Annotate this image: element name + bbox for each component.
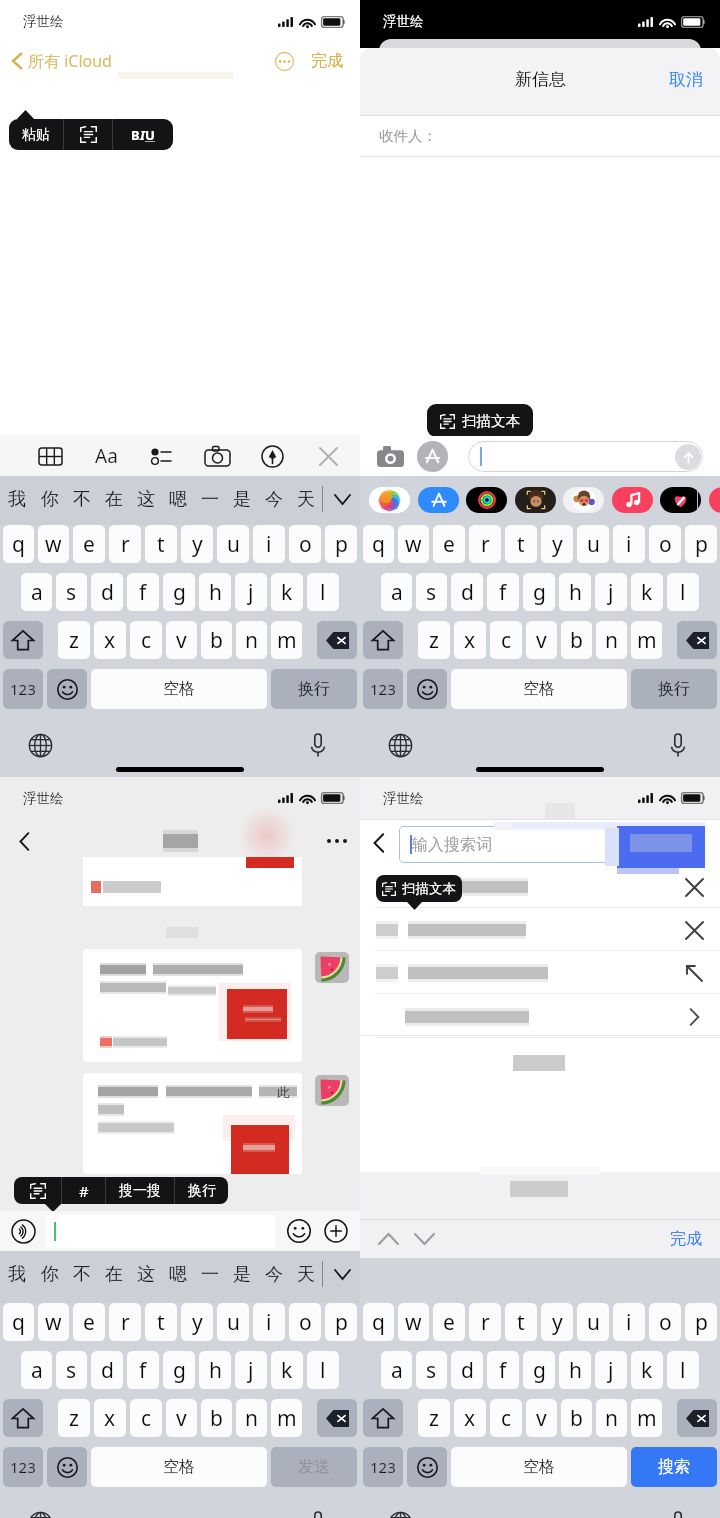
- button[interactable]: 空格: [451, 1447, 627, 1487]
- button[interactable]: Emoji: [407, 1447, 447, 1487]
- button[interactable]: y: [541, 1303, 573, 1341]
- button[interactable]: w: [38, 525, 69, 563]
- button[interactable]: d: [91, 1351, 123, 1389]
- button[interactable]: 这: [130, 476, 162, 522]
- button[interactable]: 换行: [175, 1177, 228, 1204]
- button[interactable]: 天: [290, 476, 322, 522]
- button[interactable]: 我: [0, 1251, 33, 1297]
- button[interactable]: s: [56, 573, 87, 611]
- button[interactable]: y: [181, 525, 213, 563]
- button[interactable]: j: [235, 573, 267, 611]
- button[interactable]: v: [526, 621, 557, 659]
- button[interactable]: i: [613, 1303, 645, 1341]
- button[interactable]: 123: [3, 1447, 43, 1487]
- button[interactable]: 空格: [91, 669, 267, 709]
- button[interactable]: Memoji: [515, 487, 556, 513]
- button[interactable]: k: [271, 1351, 303, 1389]
- button[interactable]: close: [312, 440, 344, 472]
- button[interactable]: a: [21, 573, 52, 611]
- button[interactable]: f: [487, 573, 519, 611]
- button[interactable]: checklist: [145, 440, 177, 472]
- button[interactable]: a: [381, 1351, 412, 1389]
- button[interactable]: r: [109, 525, 141, 563]
- button[interactable]: 一: [194, 1251, 226, 1297]
- button[interactable]: j: [595, 573, 627, 611]
- button[interactable]: s: [56, 1351, 87, 1389]
- button[interactable]: b: [201, 621, 232, 659]
- button[interactable]: 一: [194, 476, 226, 522]
- button[interactable]: n: [236, 1399, 267, 1437]
- button[interactable]: w: [398, 1303, 429, 1341]
- button[interactable]: c: [130, 1399, 162, 1437]
- button[interactable]: c: [490, 621, 522, 659]
- button[interactable]: b: [561, 1399, 592, 1437]
- button[interactable]: Change keyboard: [25, 1508, 55, 1518]
- button[interactable]: f: [127, 1351, 159, 1389]
- button[interactable]: 不: [66, 476, 98, 522]
- button[interactable]: p: [685, 1303, 717, 1341]
- button[interactable]: #: [62, 1177, 105, 1204]
- button[interactable]: t: [145, 1303, 177, 1341]
- button[interactable]: a: [21, 1351, 52, 1389]
- button[interactable]: Next: [408, 1223, 440, 1255]
- button[interactable]: 今: [258, 476, 290, 522]
- button[interactable]: o: [649, 1303, 681, 1341]
- button[interactable]: m: [631, 1399, 662, 1437]
- button[interactable]: 输入搜索词: [399, 826, 696, 863]
- button[interactable]: i: [253, 1303, 285, 1341]
- button[interactable]: Voice input: [8, 1216, 38, 1246]
- button[interactable]: l: [667, 1351, 699, 1389]
- button[interactable]: p: [685, 525, 717, 563]
- button[interactable]: r: [469, 525, 501, 563]
- button[interactable]: l: [307, 1351, 339, 1389]
- button[interactable]: c: [490, 1399, 522, 1437]
- button[interactable]: 完成: [311, 51, 343, 71]
- button[interactable]: k: [631, 573, 663, 611]
- button[interactable]: Emoji: [285, 1217, 313, 1245]
- button[interactable]: i: [613, 525, 645, 563]
- button[interactable]: j: [235, 1351, 267, 1389]
- button[interactable]: h: [199, 1351, 231, 1389]
- button[interactable]: n: [596, 1399, 627, 1437]
- button[interactable]: Photos: [369, 487, 410, 513]
- button[interactable]: g: [163, 1351, 195, 1389]
- button[interactable]: d: [451, 573, 483, 611]
- button[interactable]: q: [3, 1303, 34, 1341]
- button[interactable]: 123: [363, 669, 403, 709]
- button[interactable]: 空格: [91, 1447, 267, 1487]
- button[interactable]: e: [73, 1303, 105, 1341]
- button[interactable]: s: [416, 573, 447, 611]
- button[interactable]: Dictate: [303, 730, 333, 760]
- button[interactable]: r: [469, 1303, 501, 1341]
- button[interactable]: Health: [660, 487, 701, 513]
- button[interactable]: g: [523, 1351, 555, 1389]
- button[interactable]: 取消: [669, 69, 703, 90]
- button[interactable]: More: [322, 1217, 350, 1245]
- button[interactable]: n: [596, 621, 627, 659]
- button[interactable]: 发送: [271, 1447, 357, 1487]
- button[interactable]: v: [526, 1399, 557, 1437]
- button[interactable]: 在: [98, 476, 130, 522]
- button[interactable]: p: [325, 525, 357, 563]
- button[interactable]: e: [433, 1303, 465, 1341]
- button[interactable]: 搜索: [631, 1447, 717, 1487]
- button[interactable]: h: [559, 1351, 591, 1389]
- button[interactable]: k: [271, 573, 303, 611]
- button[interactable]: Dictate: [663, 1508, 693, 1518]
- button[interactable]: z: [418, 621, 450, 659]
- button[interactable]: z: [58, 621, 90, 659]
- button[interactable]: t: [505, 1303, 537, 1341]
- button[interactable]: More options: [322, 826, 352, 856]
- button[interactable]: Dictate: [303, 1508, 333, 1518]
- button[interactable]: [360, 951, 720, 994]
- button[interactable]: f: [487, 1351, 519, 1389]
- button[interactable]: h: [559, 573, 591, 611]
- button[interactable]: b: [201, 1399, 232, 1437]
- button[interactable]: t: [505, 525, 537, 563]
- button[interactable]: 空格: [451, 669, 627, 709]
- button[interactable]: Change keyboard: [385, 730, 415, 760]
- button[interactable]: Change keyboard: [385, 1508, 415, 1518]
- button[interactable]: aa: [90, 440, 122, 472]
- button[interactable]: q: [363, 1303, 394, 1341]
- button[interactable]: Send: [675, 444, 701, 470]
